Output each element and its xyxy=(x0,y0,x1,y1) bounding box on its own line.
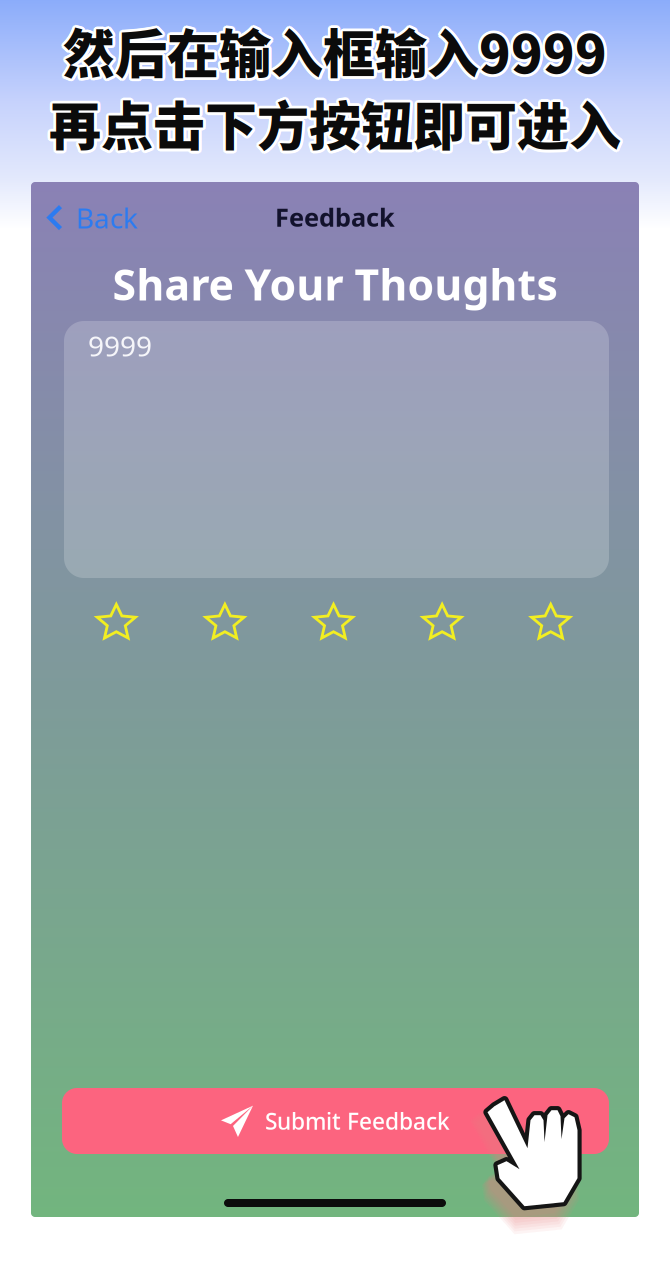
staticText: 再点击下方按钮即可进入 xyxy=(52,85,624,161)
staticText: Feedback xyxy=(275,200,395,234)
staticText: 然后在输入框输入9999 xyxy=(64,11,608,86)
button[interactable]: Back xyxy=(33,192,152,243)
staticText: 再点击下方按钮即可进入 xyxy=(47,84,619,159)
staticText: 然后在输入框输入9999 xyxy=(64,15,608,91)
staticText: 然后在输入框输入9999 xyxy=(60,13,604,88)
staticText: 再点击下方按钮即可进入 xyxy=(47,87,619,162)
staticText: 然后在输入框输入9999 xyxy=(65,12,609,87)
staticText: 再点击下方按钮即可进入 xyxy=(49,82,621,158)
button[interactable]: Rate xyxy=(388,593,496,649)
staticText: Back xyxy=(76,199,138,236)
staticText: 9999 xyxy=(88,327,152,364)
staticText: 再点击下方按钮即可进入 xyxy=(50,83,622,158)
button[interactable]: Rate xyxy=(171,593,279,649)
staticText: 然后在输入框输入9999 xyxy=(61,14,605,90)
button[interactable]: Submit Feedback xyxy=(62,1088,609,1154)
button[interactable]: Rate xyxy=(496,593,605,649)
staticText: 再点击下方按钮即可进入 xyxy=(48,88,620,163)
staticText: 然后在输入框输入9999 xyxy=(62,11,606,86)
staticText: 再点击下方按钮即可进入 xyxy=(51,84,623,159)
staticText: 再点击下方按钮即可进入 xyxy=(48,83,620,158)
staticText: Share Your Thoughts xyxy=(112,256,557,312)
staticText: Submit Feedback xyxy=(265,1106,450,1136)
button[interactable]: Rate xyxy=(279,593,388,649)
staticText: 再点击下方按钮即可进入 xyxy=(46,85,618,161)
staticText: 再点击下方按钮即可进入 xyxy=(49,88,621,163)
staticText: 再点击下方按钮即可进入 xyxy=(51,87,623,162)
button[interactable]: Rate xyxy=(62,593,171,649)
staticText: 然后在输入框输入9999 xyxy=(63,10,607,85)
staticText: 然后在输入框输入9999 xyxy=(65,14,609,90)
staticText: 再点击下方按钮即可进入 xyxy=(50,88,622,163)
staticText: 然后在输入框输入9999 xyxy=(63,13,607,88)
staticText: 然后在输入框输入9999 xyxy=(63,16,607,91)
staticText: 然后在输入框输入9999 xyxy=(61,12,605,87)
staticText: 再点击下方按钮即可进入 xyxy=(49,85,621,161)
staticText: 然后在输入框输入9999 xyxy=(66,13,610,88)
staticText: 然后在输入框输入9999 xyxy=(62,15,606,91)
